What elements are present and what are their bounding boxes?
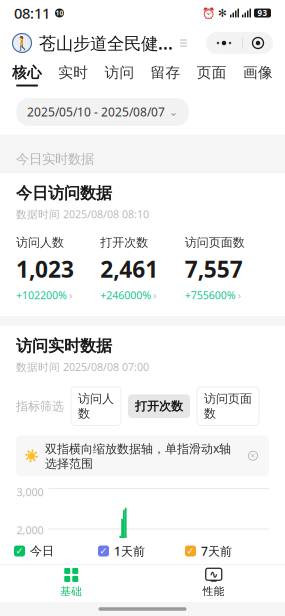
staticText: › [238,288,241,302]
button[interactable]: 菜单 [173,33,187,52]
button[interactable]: 关闭提示 [245,448,261,464]
staticText: 今日实时数据 [16,151,94,167]
staticText: 实时 [58,63,88,81]
staticText: › [153,288,156,302]
staticText: 访问人数 [78,391,114,421]
staticText: 08:11 [14,3,50,23]
button[interactable]: 打开次数 [100,235,185,302]
staticText: 访问人数 [16,235,64,250]
staticText: 1,023 [16,254,74,284]
staticText: 双指横向缩放数据轴，单指滑动x轴选择范围 [45,440,231,471]
staticText: 1,000 [16,561,43,575]
staticText: › [69,288,72,302]
button[interactable]: 关闭 [243,32,273,54]
staticText: 7天前 [201,543,232,559]
staticText: 2,000 [16,523,43,537]
button[interactable]: 更多 [206,32,242,54]
staticText: 93 [257,8,267,18]
staticText: 7,557 [185,254,243,284]
button[interactable]: 实时 [50,61,96,89]
staticText: 0 [37,599,43,613]
staticText: 2025/05/10 - 2025/08/07 [27,104,165,120]
staticText: 访问 [104,63,134,81]
staticText: 访问页面数 [204,391,252,421]
button[interactable]: 2025/05/10 - 2025/08/07 [16,98,189,126]
staticText: +755600% [185,288,236,302]
staticText: 基础 [60,585,82,598]
staticText: 今日 [30,544,54,558]
staticText: 指标筛选 [16,399,64,413]
staticText: 🚶 [13,35,30,51]
button[interactable]: 核心 [4,61,50,89]
staticText: 打开次数 [100,235,148,250]
staticText: 页面 [197,63,227,81]
staticText: 2,461 [100,254,158,284]
staticText: ∿ [209,568,218,580]
staticText: ⏰ [202,7,215,19]
button[interactable]: 访问页面数 [185,235,269,302]
staticText: 10 [55,9,63,17]
button[interactable]: ∿ [179,568,249,598]
button[interactable]: 打开次数 [128,394,190,418]
button[interactable]: 访问人数 [16,235,100,302]
button[interactable]: 访问页面数 [197,387,259,425]
button[interactable]: 访问人数 [71,387,121,425]
button[interactable]: 基础 [36,568,106,598]
staticText: 留存 [151,63,181,81]
button[interactable]: 页面 [189,61,235,89]
staticText: ☀️ [24,449,39,463]
staticText: 访问实时数据 [16,336,112,356]
staticText: +102200% [16,288,67,302]
button[interactable]: ✓ [98,543,145,559]
staticText: +246000% [100,288,151,302]
staticText: 数据时间 2025/08/08 07:00 [16,360,149,374]
staticText: 核心 [12,63,42,81]
button[interactable]: ✓ [185,543,232,559]
staticText: 性能 [203,585,225,598]
staticText: 1天前 [114,543,145,559]
staticText: ✕ [250,452,256,460]
staticText: ✓ [15,546,23,556]
staticText: 今日访问数据 [16,183,112,203]
staticText: 画像 [243,63,273,81]
staticText: 打开次数 [135,399,183,413]
staticText: ✓ [99,546,107,556]
staticText: ✻ [218,7,227,19]
button[interactable]: ✓ [14,544,54,558]
button[interactable]: 画像 [235,61,281,89]
staticText: 数据时间 2025/08/08 08:10 [16,207,149,221]
staticText: ✓ [186,546,194,556]
button[interactable]: 留存 [142,61,189,89]
button[interactable]: 访问 [96,61,142,89]
button[interactable]: 🚶 [12,31,173,54]
staticText: ⌄ [169,106,178,118]
staticText: 3,000 [16,485,43,499]
staticText: 苍山步道全民健... [39,31,173,54]
staticText: 访问页面数 [185,235,245,250]
